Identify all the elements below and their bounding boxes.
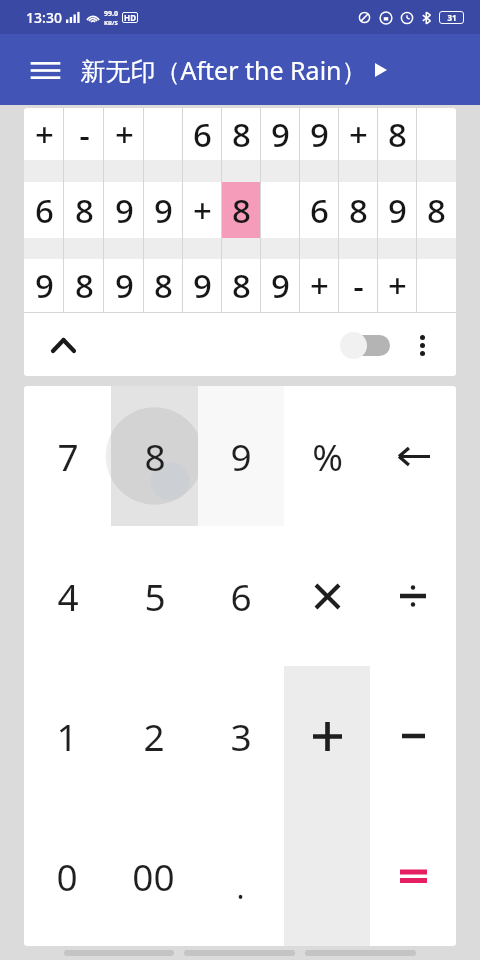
staticText: 9: [154, 188, 173, 233]
button[interactable]: Equals: [370, 806, 456, 946]
staticText: +: [349, 112, 368, 157]
staticText: 9: [193, 263, 212, 308]
button[interactable]: -: [64, 108, 104, 160]
button[interactable]: 00: [110, 806, 197, 946]
button[interactable]: 8: [222, 108, 261, 160]
staticText: 8: [232, 188, 251, 233]
button[interactable]: +: [300, 259, 339, 312]
staticText: 7: [57, 431, 79, 481]
button[interactable]: 1: [24, 666, 110, 806]
staticText: 8: [154, 263, 173, 308]
staticText: 9: [271, 112, 290, 157]
staticText: 6: [35, 188, 54, 233]
button[interactable]: 6: [300, 182, 339, 238]
staticText: KB/S: [104, 19, 118, 27]
button[interactable]: 8: [64, 182, 104, 238]
button[interactable]: 9: [198, 386, 284, 526]
button[interactable]: 9: [24, 259, 64, 312]
staticText: 8: [427, 188, 446, 233]
button[interactable]: 8: [222, 259, 261, 312]
staticText: 5: [144, 571, 166, 621]
button[interactable]: Toggle: [340, 328, 394, 362]
button[interactable]: 8: [378, 108, 417, 160]
staticText: 8: [75, 263, 94, 308]
button[interactable]: 9: [378, 182, 417, 238]
button[interactable]: [144, 108, 183, 160]
button[interactable]: Divide: [370, 526, 456, 666]
button[interactable]: 9: [104, 259, 144, 312]
button[interactable]: Backspace: [370, 386, 456, 526]
staticText: 8: [232, 263, 251, 308]
staticText: 8: [144, 431, 166, 481]
button[interactable]: 9: [144, 182, 183, 238]
staticText: 99.0: [104, 9, 118, 19]
staticText: 4: [57, 571, 79, 621]
button[interactable]: 9: [183, 259, 222, 312]
staticText: 3: [230, 711, 252, 761]
button[interactable]: %: [284, 386, 370, 526]
button[interactable]: 6: [24, 182, 64, 238]
staticText: +: [388, 263, 407, 308]
button[interactable]: 9: [261, 259, 300, 312]
button[interactable]: 2: [110, 666, 197, 806]
button[interactable]: Multiply: [284, 526, 370, 666]
staticText: 9: [310, 112, 329, 157]
staticText: +: [115, 112, 134, 157]
staticText: 00: [132, 851, 175, 901]
staticText: HD: [124, 12, 136, 23]
button[interactable]: 8: [222, 182, 261, 238]
button[interactable]: Collapse: [40, 322, 86, 368]
button[interactable]: [261, 182, 300, 238]
staticText: .: [236, 867, 245, 908]
button[interactable]: 0: [24, 806, 110, 946]
button[interactable]: Play: [369, 58, 393, 82]
button[interactable]: Minus: [370, 666, 456, 806]
button[interactable]: 6: [198, 526, 284, 666]
button[interactable]: 7: [24, 386, 111, 526]
staticText: 9: [115, 263, 134, 308]
staticText: 8: [232, 112, 251, 157]
staticText: 6: [310, 188, 329, 233]
staticText: -: [353, 263, 364, 308]
staticText: 8: [349, 188, 368, 233]
button[interactable]: 8: [339, 182, 378, 238]
button[interactable]: 8: [417, 182, 456, 238]
staticText: 31: [447, 12, 457, 23]
staticText: +: [35, 112, 54, 157]
button[interactable]: 9: [300, 108, 339, 160]
button[interactable]: 4: [24, 526, 111, 666]
button[interactable]: .: [197, 806, 284, 946]
button[interactable]: -: [339, 259, 378, 312]
button[interactable]: 6: [183, 108, 222, 160]
staticText: 6: [230, 571, 252, 621]
staticText: 9: [271, 263, 290, 308]
staticText: +: [193, 188, 212, 233]
button[interactable]: 8: [111, 386, 198, 526]
button[interactable]: +: [378, 259, 417, 312]
staticText: +: [310, 263, 329, 308]
staticText: 8: [388, 112, 407, 157]
button[interactable]: Menu: [22, 47, 68, 93]
staticText: 9: [388, 188, 407, 233]
button[interactable]: 9: [261, 108, 300, 160]
button[interactable]: 5: [111, 526, 198, 666]
button[interactable]: Plus: [284, 666, 370, 946]
button[interactable]: +: [104, 108, 144, 160]
button[interactable]: More options: [402, 325, 442, 365]
button[interactable]: 8: [144, 259, 183, 312]
staticText: 8: [75, 188, 94, 233]
staticText: 13:30: [26, 8, 62, 27]
button[interactable]: 8: [64, 259, 104, 312]
button[interactable]: +: [24, 108, 64, 160]
staticText: 9: [115, 188, 134, 233]
button[interactable]: 9: [104, 182, 144, 238]
button[interactable]: +: [339, 108, 378, 160]
button[interactable]: +: [183, 182, 222, 238]
button[interactable]: 3: [197, 666, 284, 806]
staticText: 6: [193, 112, 212, 157]
